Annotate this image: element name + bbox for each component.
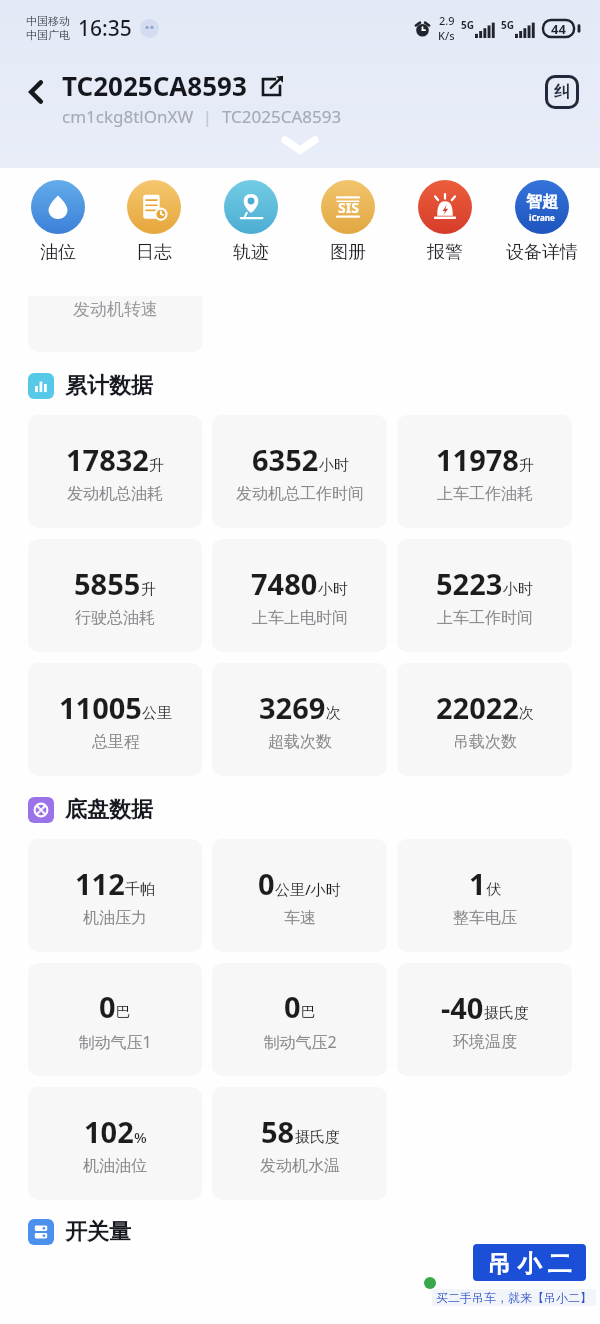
button[interactable]: 5855 (28, 539, 202, 652)
staticText: % (134, 1127, 147, 1147)
button[interactable]: Correct data (542, 72, 582, 112)
staticText: 机油油位 (83, 1156, 147, 1176)
staticText: 千帕 (125, 880, 155, 899)
staticText: K/s (438, 28, 455, 43)
staticText: TC2025CA8593 (222, 105, 342, 128)
staticText: 开关量 (65, 1218, 131, 1246)
staticText: 超载次数 (268, 732, 332, 752)
button[interactable]: 6352 (212, 415, 387, 528)
staticText: 图册 (330, 241, 366, 264)
staticText: 22022 (436, 688, 519, 727)
staticText: TC2025CA8593 (62, 68, 247, 103)
staticText: 智超 (526, 192, 558, 212)
staticText: 车速 (284, 908, 316, 928)
staticText: 1 (469, 864, 486, 903)
button[interactable]: 开关量 (28, 1218, 572, 1246)
staticText: cm1ckg8tlOnXW (62, 105, 194, 128)
staticText: 制动气压1 (78, 1031, 152, 1053)
staticText: 累计数据 (65, 372, 153, 400)
staticText: 制动气压2 (263, 1031, 337, 1053)
button[interactable]: 智超 (493, 180, 590, 264)
staticText: 0 (99, 987, 116, 1026)
button[interactable]: 底盘数据 (28, 796, 572, 824)
staticText: 伏 (486, 880, 501, 899)
button[interactable]: 发动机转速 (28, 296, 203, 352)
button[interactable]: 0 (212, 839, 387, 952)
staticText: 58 (261, 1112, 295, 1151)
button[interactable]: 0 (28, 963, 202, 1076)
staticText: 整车电压 (453, 908, 517, 928)
button[interactable]: 油位 (10, 180, 106, 264)
staticText: 环境温度 (453, 1032, 517, 1052)
button[interactable]: Expand details (265, 130, 335, 160)
button[interactable]: 22022 (397, 663, 572, 776)
staticText: 行驶总油耗 (75, 608, 155, 628)
staticText: 5855 (74, 564, 141, 603)
button[interactable]: 吊 小 二 (473, 1244, 586, 1281)
staticText: -40 (441, 988, 484, 1027)
staticText: 16:35 (78, 14, 132, 43)
button[interactable]: 0 (212, 963, 387, 1076)
staticText: 次 (326, 704, 341, 723)
staticText: 吊载次数 (453, 732, 517, 752)
staticText: 中国移动 (26, 14, 70, 28)
staticText: 巴 (301, 1003, 316, 1022)
staticText: | (194, 105, 222, 128)
staticText: 公里/小时 (275, 879, 341, 899)
staticText: 发动机总油耗 (67, 484, 163, 504)
button[interactable]: 58 (212, 1087, 387, 1200)
staticText: 6352 (252, 440, 319, 479)
staticText: 7480 (251, 564, 318, 603)
staticText: 次 (519, 704, 534, 723)
staticText: 上车工作油耗 (437, 484, 533, 504)
button[interactable]: 112 (28, 839, 202, 952)
staticText: 升 (519, 456, 534, 475)
button[interactable]: 日志 (106, 180, 202, 264)
staticText: 小时 (318, 580, 348, 599)
staticText: 5G (461, 18, 474, 32)
staticText: 底盘数据 (65, 796, 153, 824)
button[interactable]: -40 (397, 963, 572, 1076)
button[interactable]: 1 (397, 839, 572, 952)
button[interactable]: SIS (299, 180, 396, 264)
staticText: 小时 (319, 456, 349, 475)
button[interactable]: Edit device name (257, 72, 285, 100)
button[interactable]: 7480 (212, 539, 387, 652)
staticText: 摄氏度 (295, 1128, 340, 1147)
staticText: 5223 (436, 564, 503, 603)
staticText: SIS (338, 198, 359, 217)
staticText: 17832 (66, 440, 149, 479)
button[interactable]: 3269 (212, 663, 387, 776)
button[interactable]: 累计数据 (28, 372, 572, 400)
staticText: 升 (149, 456, 164, 475)
staticText: 上车上电时间 (252, 608, 348, 628)
staticText: 0 (258, 864, 275, 903)
staticText: 11005 (59, 688, 142, 727)
button[interactable]: Back (14, 70, 58, 114)
staticText: 小时 (503, 580, 533, 599)
staticText: 公里 (142, 704, 172, 723)
button[interactable]: 17832 (28, 415, 202, 528)
button[interactable]: 报警 (396, 180, 493, 264)
staticText: 轨迹 (233, 241, 269, 264)
staticText: 发动机总工作时间 (236, 484, 364, 504)
button[interactable]: 11978 (397, 415, 572, 528)
staticText: 油位 (40, 241, 76, 264)
staticText: 5G (501, 18, 514, 32)
staticText: 11978 (436, 440, 519, 479)
staticText: 机油压力 (83, 908, 147, 928)
staticText: 摄氏度 (484, 1004, 529, 1023)
staticText: 发动机转速 (73, 299, 158, 320)
staticText: 设备详情 (506, 241, 578, 264)
button[interactable]: 轨迹 (202, 180, 299, 264)
staticText: 纠 (554, 82, 570, 102)
staticText: 总里程 (92, 732, 140, 752)
staticText: 3269 (259, 688, 326, 727)
button[interactable]: 102 (28, 1087, 202, 1200)
staticText: 发动机水温 (260, 1156, 340, 1176)
staticText: 日志 (136, 241, 172, 264)
staticText: 升 (141, 580, 156, 599)
button[interactable]: 5223 (397, 539, 572, 652)
staticText: 巴 (116, 1003, 131, 1022)
button[interactable]: 11005 (28, 663, 202, 776)
